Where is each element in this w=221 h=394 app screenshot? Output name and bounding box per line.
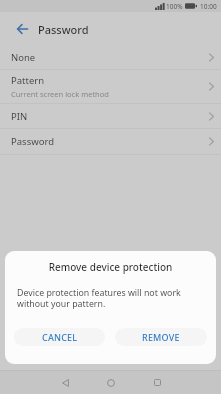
button[interactable]: CANCEL (14, 328, 105, 346)
staticText: Password (11, 135, 54, 148)
staticText: Password (38, 22, 89, 37)
staticText: Remove device protection (5, 260, 216, 274)
button[interactable]: Pattern (0, 70, 221, 103)
staticText: Current screen lock method (11, 89, 109, 99)
staticText: None (11, 51, 36, 64)
button[interactable] (13, 20, 31, 38)
button[interactable]: REMOVE (115, 328, 207, 346)
staticText: Pattern (11, 74, 45, 87)
staticText: 10:00 (200, 2, 217, 11)
button[interactable] (46, 371, 84, 394)
button[interactable]: Password (0, 129, 221, 154)
staticText: REMOVE (142, 331, 180, 343)
staticText: 100% (166, 2, 183, 11)
staticText: PIN (11, 110, 28, 123)
button[interactable]: None (0, 46, 221, 69)
button[interactable]: PIN (0, 104, 221, 128)
staticText: CANCEL (42, 331, 78, 343)
button[interactable] (138, 371, 176, 394)
button[interactable] (92, 371, 130, 394)
staticText: Device protection features will not work… (17, 287, 204, 310)
